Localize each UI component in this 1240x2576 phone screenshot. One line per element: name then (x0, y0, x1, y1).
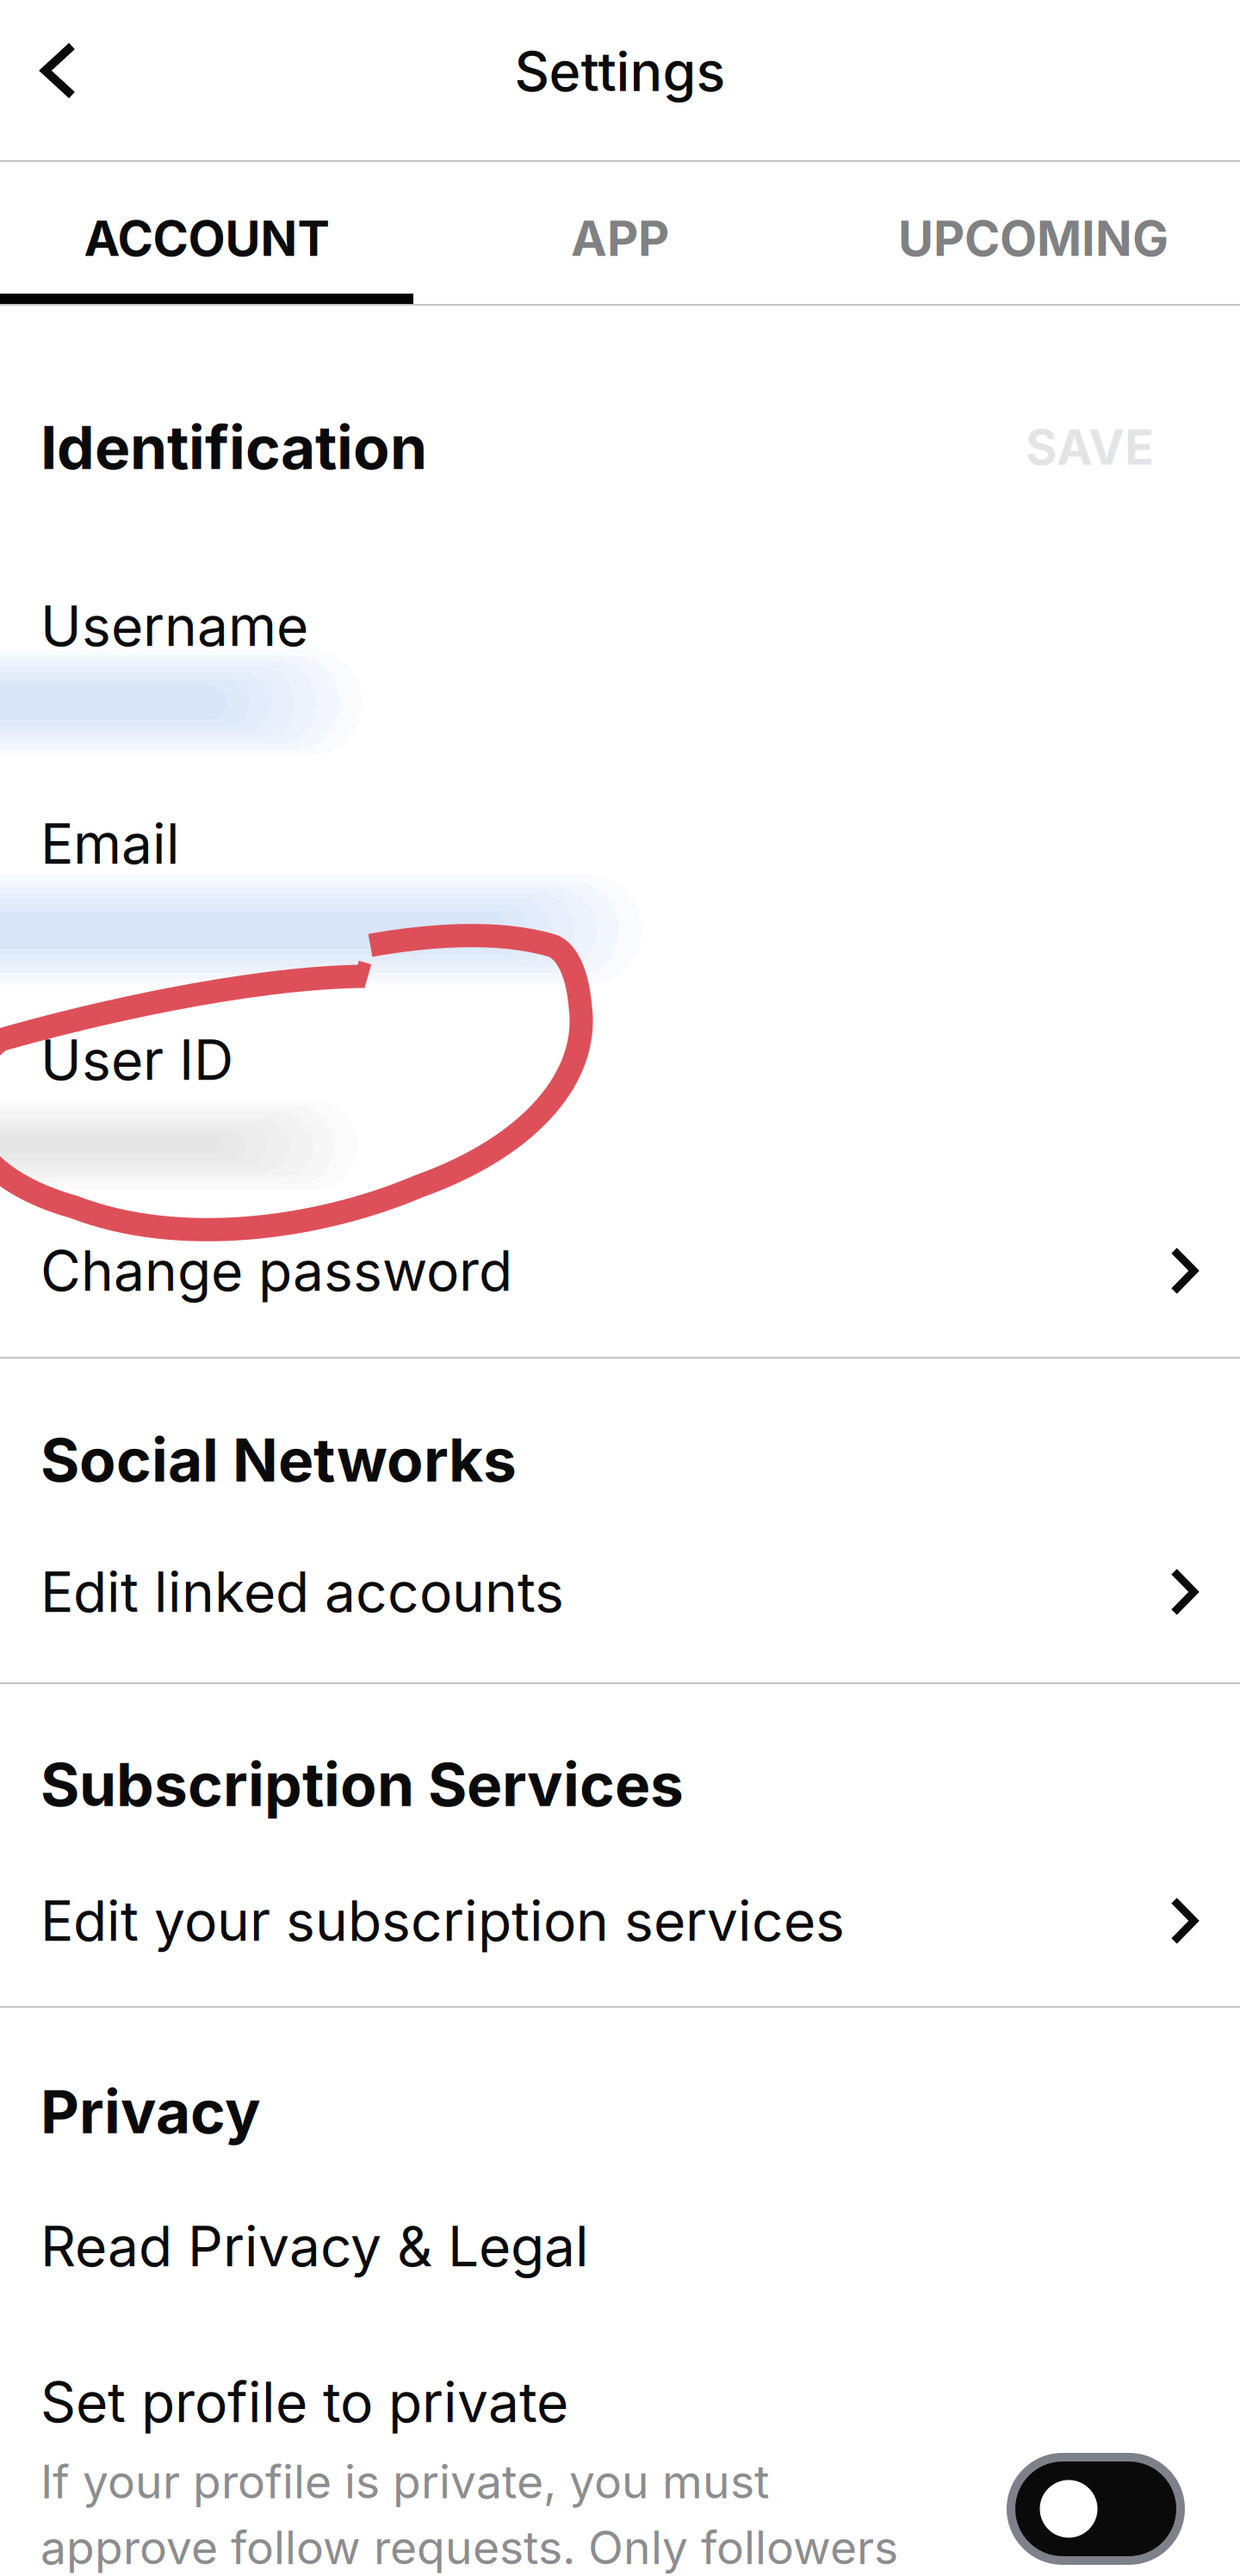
staticText: User ID (40, 1027, 233, 1093)
button[interactable]: ACCOUNT (0, 162, 413, 304)
button[interactable]: UPCOMING (827, 162, 1240, 304)
staticText: Email (40, 810, 180, 877)
staticText: UPCOMING (898, 209, 1169, 268)
button[interactable]: Edit your subscription services (0, 1887, 1240, 1954)
staticText: Set profile to private (40, 2369, 568, 2435)
button[interactable]: Read Privacy & Legal (0, 2213, 1240, 2280)
staticText: Edit linked accounts (40, 1559, 564, 1625)
staticText: If your profile is private, you must app… (40, 2454, 898, 2575)
staticText: APP (571, 209, 669, 268)
button[interactable]: Back (0, 5, 117, 136)
staticText: ACCOUNT (84, 209, 329, 268)
button[interactable]: APP (413, 162, 827, 304)
button[interactable]: Set profile to private (1007, 2453, 1185, 2565)
staticText: Social Networks (40, 1424, 517, 1496)
button[interactable]: Change password (0, 1237, 1240, 1304)
staticText: Identification (40, 411, 427, 483)
staticText: Subscription Services (40, 1748, 684, 1821)
staticText: SAVE (1026, 418, 1154, 476)
staticText: Privacy (40, 2075, 261, 2148)
staticText: Change password (40, 1237, 512, 1304)
button[interactable]: Edit linked accounts (0, 1558, 1240, 1625)
button[interactable]: SAVE (1012, 411, 1168, 484)
staticText: Username (40, 593, 308, 659)
staticText: Edit your subscription services (40, 1887, 845, 1954)
staticText: Settings (515, 39, 725, 104)
staticText: Read Privacy & Legal (40, 2213, 589, 2280)
